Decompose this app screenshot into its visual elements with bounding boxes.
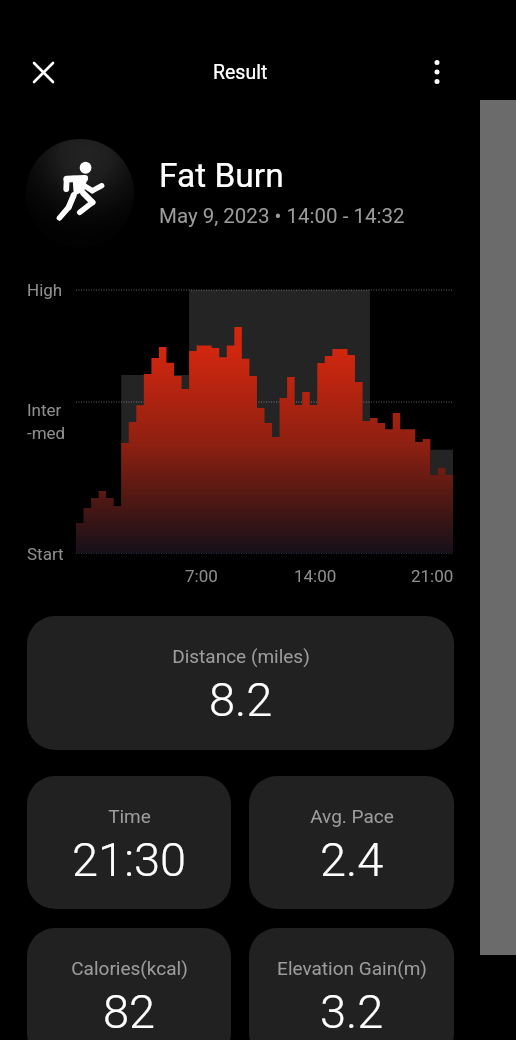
staticText: 7:00 [185,566,218,586]
staticText: 82 [103,984,156,1039]
staticText: May 9, 2023 • 14:00 - 14:32 [159,204,405,228]
button[interactable]: Time [27,776,231,909]
button[interactable]: Distance (miles) [27,616,454,750]
staticText: Start [27,544,64,564]
staticText: Inter [27,400,62,420]
staticText: 8.2 [209,672,273,727]
button[interactable]: More options [415,50,459,94]
staticText: High [27,280,63,300]
button[interactable]: Calories(kcal) [27,928,231,1040]
staticText: Fat Burn [159,156,284,195]
staticText: 21:00 [411,566,454,586]
staticText: -med [27,423,66,443]
staticText: 21:30 [72,832,187,887]
staticText: Time [108,805,151,827]
staticText: Calories(kcal) [71,957,188,979]
staticText: Distance (miles) [172,645,310,667]
staticText: 14:00 [294,566,337,586]
staticText: Result [213,61,268,84]
button[interactable]: Elevation Gain(m) [249,928,454,1040]
button[interactable]: Close [21,50,65,94]
staticText: Avg. Pace [310,805,394,827]
staticText: 2.4 [320,832,384,887]
staticText: 3.2 [320,984,384,1039]
button[interactable]: Avg. Pace [249,776,454,909]
staticText: Elevation Gain(m) [277,957,427,979]
